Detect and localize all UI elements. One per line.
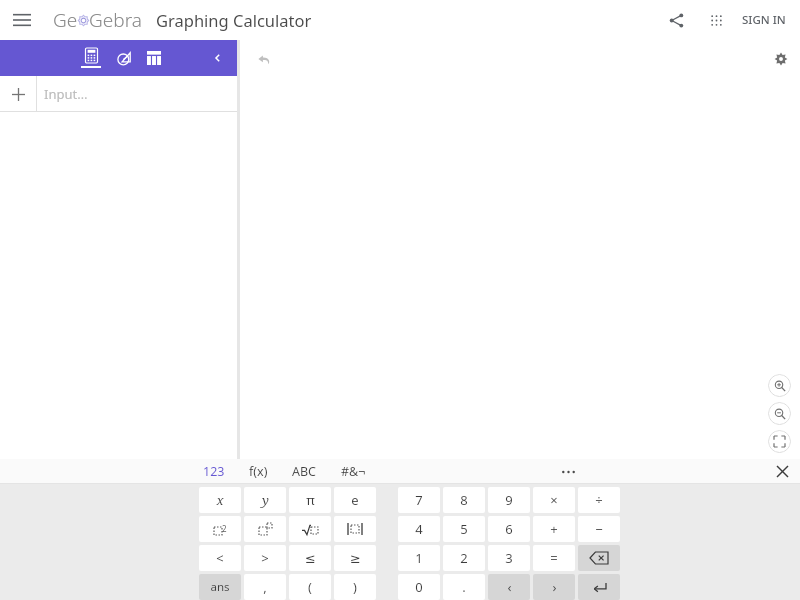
staticText: 6 xyxy=(505,520,513,538)
button[interactable]: 0 xyxy=(398,574,440,600)
staticText: 5 xyxy=(460,520,468,538)
button[interactable]: Close keyboard xyxy=(767,459,797,484)
button[interactable]: > xyxy=(244,545,286,571)
button[interactable]: , xyxy=(244,574,286,600)
button[interactable]: ≤ xyxy=(289,545,331,571)
button[interactable]: 3 xyxy=(488,545,530,571)
button[interactable]: . xyxy=(443,574,485,600)
staticText: > xyxy=(261,549,269,567)
button[interactable]: Add input xyxy=(0,76,36,112)
staticText: − xyxy=(595,520,603,538)
staticText: SIGN IN xyxy=(742,12,786,28)
staticText: Ge xyxy=(53,7,78,33)
staticText: ≤ xyxy=(305,551,316,566)
staticText: 7 xyxy=(415,491,423,509)
button[interactable]: × xyxy=(533,487,575,513)
staticText: › xyxy=(552,578,557,596)
button[interactable]: sqrt xyxy=(289,516,331,542)
button[interactable]: + xyxy=(533,516,575,542)
button[interactable]: More xyxy=(554,459,582,484)
staticText: × xyxy=(550,491,558,509)
staticText: 8 xyxy=(460,491,468,509)
button[interactable]: enter xyxy=(578,574,620,600)
button[interactable]: < xyxy=(199,545,241,571)
button[interactable]: Settings xyxy=(768,46,794,72)
button[interactable]: ≥ xyxy=(334,545,376,571)
button[interactable]: 1 xyxy=(398,545,440,571)
button[interactable]: power xyxy=(244,516,286,542)
staticText: #&¬ xyxy=(341,463,366,480)
button[interactable]: › xyxy=(533,574,575,600)
button[interactable]: Collapse panel xyxy=(203,40,233,76)
button[interactable]: 2 xyxy=(443,545,485,571)
button[interactable]: Fullscreen xyxy=(768,430,791,453)
button[interactable]: Apps xyxy=(698,2,734,38)
button[interactable]: x xyxy=(199,487,241,513)
button[interactable]: 7 xyxy=(398,487,440,513)
button[interactable]: ÷ xyxy=(578,487,620,513)
button[interactable]: Zoom in xyxy=(768,374,791,397)
staticText: 123 xyxy=(203,463,225,480)
button[interactable]: Share xyxy=(656,0,696,40)
button[interactable]: 9 xyxy=(488,487,530,513)
staticText: 4 xyxy=(415,520,423,538)
staticText: π xyxy=(306,491,315,509)
button[interactable]: − xyxy=(578,516,620,542)
staticText: 1 xyxy=(415,549,423,567)
button[interactable]: ( xyxy=(289,574,331,600)
staticText: ≥ xyxy=(350,551,361,566)
staticText: ÷ xyxy=(595,491,603,509)
staticText: , xyxy=(263,578,267,596)
button[interactable]: 4 xyxy=(398,516,440,542)
button[interactable]: ) xyxy=(334,574,376,600)
staticText: + xyxy=(550,520,558,538)
button[interactable]: ‹ xyxy=(488,574,530,600)
staticText: 2 xyxy=(222,523,227,534)
button[interactable]: 6 xyxy=(488,516,530,542)
button[interactable]: π xyxy=(289,487,331,513)
button[interactable]: y xyxy=(244,487,286,513)
button[interactable]: ans xyxy=(199,574,241,600)
staticText: = xyxy=(550,549,558,567)
staticText: < xyxy=(216,549,224,567)
staticText: Input… xyxy=(44,85,88,103)
button[interactable]: 5 xyxy=(443,516,485,542)
button[interactable]: square xyxy=(199,516,241,542)
button[interactable]: f(x) xyxy=(246,459,271,484)
button[interactable]: Table view xyxy=(142,40,166,76)
button[interactable]: = xyxy=(533,545,575,571)
staticText: 2 xyxy=(460,549,468,567)
staticText: 3 xyxy=(505,549,513,567)
button[interactable]: SIGN IN xyxy=(736,0,792,40)
staticText: y xyxy=(262,491,269,509)
staticText: e xyxy=(351,491,359,509)
staticText: ans xyxy=(210,579,230,595)
button[interactable]: Menu xyxy=(0,0,44,40)
button[interactable]: 123 xyxy=(200,459,228,484)
button[interactable]: Zoom out xyxy=(768,402,791,425)
button[interactable]: Tools xyxy=(112,40,136,76)
button[interactable]: ABC xyxy=(289,459,320,484)
staticText: . xyxy=(462,578,466,596)
staticText: Graphing Calculator xyxy=(156,9,312,31)
staticText: 9 xyxy=(505,491,513,509)
staticText: ‹ xyxy=(507,578,512,596)
button[interactable]: e xyxy=(334,487,376,513)
staticText: 0 xyxy=(415,578,423,596)
button[interactable]: abs xyxy=(334,516,376,542)
button[interactable]: 8 xyxy=(443,487,485,513)
button[interactable]: Algebra view xyxy=(76,40,106,76)
staticText: Gebra xyxy=(89,7,142,33)
staticText: f(x) xyxy=(249,463,268,480)
button[interactable]: Undo xyxy=(251,47,277,73)
button[interactable]: #&¬ xyxy=(338,459,369,484)
staticText: x xyxy=(216,491,224,509)
staticText: ( xyxy=(308,578,312,596)
staticText: ABC xyxy=(292,463,317,480)
staticText: ) xyxy=(353,578,357,596)
button[interactable]: backspace xyxy=(578,545,620,571)
